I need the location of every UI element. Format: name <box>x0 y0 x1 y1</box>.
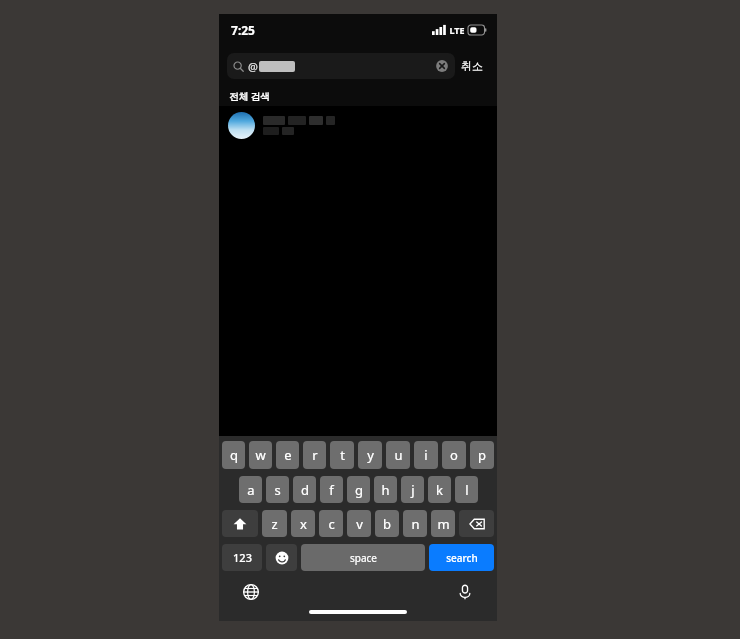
button[interactable]: r <box>303 441 326 469</box>
button[interactable]: v <box>347 510 371 537</box>
staticText: r <box>312 446 318 464</box>
staticText: u <box>394 446 403 464</box>
staticText: y <box>367 446 374 464</box>
staticText: f <box>329 481 334 499</box>
button[interactable]: a <box>239 476 262 503</box>
button[interactable]: n <box>403 510 427 537</box>
button[interactable]: g <box>347 476 370 503</box>
staticText: v <box>356 515 363 533</box>
button[interactable]: @ <box>227 53 455 79</box>
button[interactable]: l <box>455 476 478 503</box>
button[interactable]: space <box>301 544 425 571</box>
staticText: i <box>424 446 428 464</box>
button[interactable]: Emoji <box>266 544 297 571</box>
staticText: l <box>465 481 469 499</box>
button[interactable]: m <box>431 510 455 537</box>
button[interactable]: e <box>276 441 299 469</box>
button[interactable]: Clear text <box>435 59 449 73</box>
staticText: 123 <box>233 550 252 565</box>
button[interactable]: h <box>374 476 397 503</box>
button[interactable]: k <box>428 476 451 503</box>
staticText: n <box>411 515 420 533</box>
staticText: LTE <box>449 24 465 36</box>
staticText: z <box>271 515 278 533</box>
staticText: g <box>355 481 363 499</box>
button[interactable]: d <box>293 476 316 503</box>
staticText: b <box>383 515 391 533</box>
staticText: w <box>255 446 266 464</box>
button[interactable]: p <box>470 441 494 469</box>
button[interactable]: Backspace <box>459 510 494 537</box>
staticText: e <box>284 446 292 464</box>
button[interactable]: j <box>401 476 424 503</box>
button[interactable]: Change keyboard language <box>240 581 262 603</box>
staticText: s <box>274 481 281 499</box>
staticText: p <box>478 446 486 464</box>
staticText: j <box>411 481 415 499</box>
button[interactable]: s <box>266 476 289 503</box>
button[interactable]: w <box>249 441 272 469</box>
staticText: c <box>328 515 335 533</box>
button[interactable] <box>219 106 497 144</box>
button[interactable]: x <box>291 510 315 537</box>
button[interactable]: u <box>386 441 410 469</box>
staticText: space <box>350 551 377 565</box>
staticText: o <box>450 446 458 464</box>
button[interactable]: o <box>442 441 466 469</box>
staticText: d <box>301 481 309 499</box>
staticText: t <box>340 446 345 464</box>
staticText: k <box>436 481 443 499</box>
button[interactable]: q <box>222 441 245 469</box>
button[interactable]: i <box>414 441 438 469</box>
button[interactable]: z <box>262 510 287 537</box>
staticText: search <box>446 551 478 565</box>
staticText: m <box>437 515 450 533</box>
staticText: 전체 검색 <box>229 90 270 103</box>
staticText: x <box>300 515 307 533</box>
staticText: 7:25 <box>231 22 255 38</box>
button[interactable]: Shift <box>222 510 258 537</box>
button[interactable]: c <box>319 510 343 537</box>
staticText: @ <box>248 59 258 74</box>
button[interactable]: t <box>330 441 354 469</box>
staticText: h <box>381 481 390 499</box>
staticText: 취소 <box>461 59 483 73</box>
button[interactable]: search <box>429 544 494 571</box>
staticText: a <box>247 481 255 499</box>
button[interactable]: b <box>375 510 399 537</box>
staticText: q <box>230 446 238 464</box>
button[interactable]: f <box>320 476 343 503</box>
button[interactable]: 123 <box>222 544 262 571</box>
button[interactable]: 취소 <box>455 55 489 77</box>
button[interactable]: Voice input <box>454 581 476 603</box>
button[interactable]: y <box>358 441 382 469</box>
